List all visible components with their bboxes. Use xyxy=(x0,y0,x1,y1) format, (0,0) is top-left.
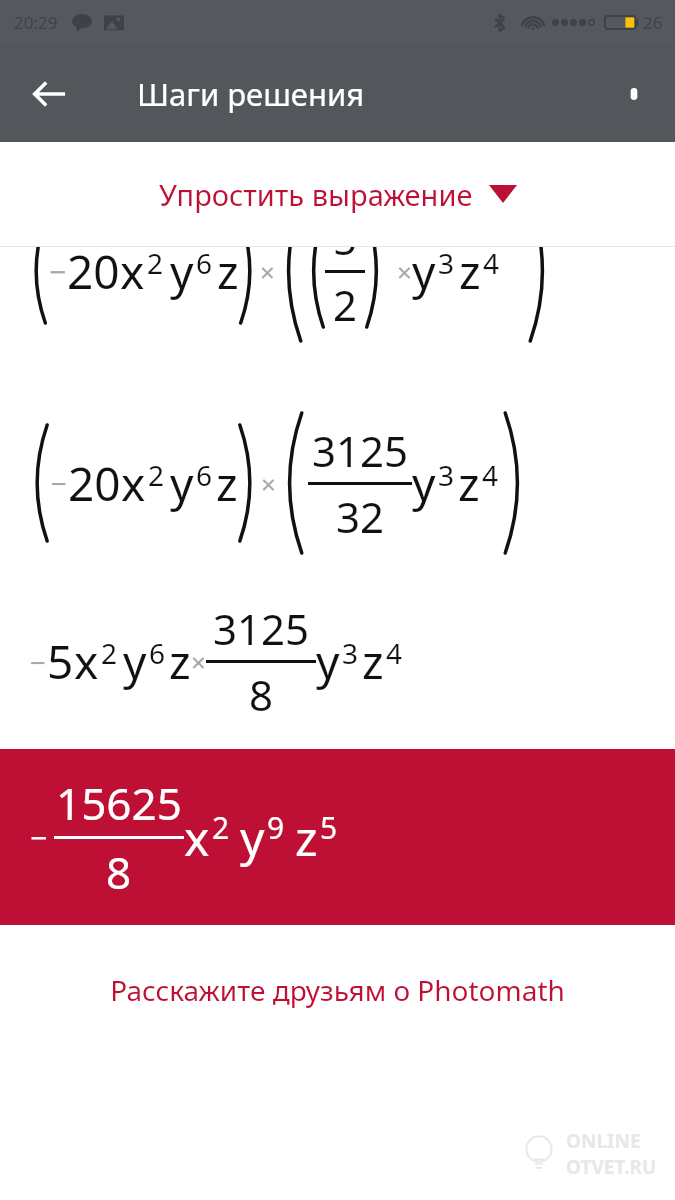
staticText: y xyxy=(412,247,436,303)
staticText: 3125 xyxy=(312,422,409,479)
staticText: × xyxy=(261,466,276,501)
staticText: 3 xyxy=(438,456,455,494)
button[interactable]: Упростить выражение xyxy=(0,142,675,246)
staticText: y xyxy=(316,630,340,693)
staticText: y xyxy=(170,247,194,303)
staticText: z xyxy=(362,630,384,693)
staticText: Расскажите друзьям о Photomath xyxy=(110,971,565,1009)
staticText: z xyxy=(217,247,239,303)
staticText: Шаги решения xyxy=(137,73,365,115)
staticText: ONLINE xyxy=(566,1128,641,1154)
staticText: y xyxy=(123,630,147,693)
staticText: 20:29 xyxy=(14,11,58,34)
staticText: 4 xyxy=(483,247,500,282)
button[interactable]: − xyxy=(0,749,675,925)
staticText: 6 xyxy=(196,247,213,282)
staticText: Упростить выражение xyxy=(159,175,473,214)
staticText: 3 xyxy=(438,247,455,282)
staticText: 5 xyxy=(320,807,338,848)
staticText: 4 xyxy=(482,456,499,494)
staticText: y xyxy=(412,452,436,515)
staticText: 5 xyxy=(47,630,74,693)
staticText: z xyxy=(459,247,481,303)
staticText: x xyxy=(120,247,145,303)
button[interactable]: Расскажите друзьям о Photomath xyxy=(0,925,675,1055)
staticText: − xyxy=(30,643,47,681)
button[interactable]: − xyxy=(0,573,675,749)
staticText: 2 xyxy=(333,276,358,333)
staticText: 32 xyxy=(336,488,385,545)
staticText: y xyxy=(170,452,194,515)
staticText: z xyxy=(216,452,238,515)
staticText: z xyxy=(169,630,191,693)
staticText: − xyxy=(49,251,67,292)
staticText: y xyxy=(240,805,265,870)
staticText: 8 xyxy=(106,842,132,902)
staticText: 2 xyxy=(147,247,164,282)
staticText: z xyxy=(458,452,480,515)
staticText: × xyxy=(397,254,412,289)
staticText: OTVET.RU xyxy=(566,1154,657,1180)
button[interactable]: Back xyxy=(22,67,76,121)
staticText: 20 xyxy=(68,452,121,515)
staticText: x xyxy=(74,630,99,693)
staticText: 2 xyxy=(148,456,165,494)
staticText: 3125 xyxy=(213,600,310,657)
button[interactable]: − xyxy=(0,247,675,393)
staticText: 2 xyxy=(212,807,230,848)
staticText: 4 xyxy=(386,634,403,672)
staticText: 8 xyxy=(249,666,274,723)
staticText: z xyxy=(295,805,318,870)
staticText: − xyxy=(51,464,68,502)
staticText: 15625 xyxy=(56,773,182,833)
staticText: x xyxy=(121,452,146,515)
button[interactable]: − xyxy=(0,393,675,573)
staticText: 6 xyxy=(196,456,213,494)
staticText: 6 xyxy=(149,634,166,672)
button[interactable]: More options xyxy=(607,67,661,121)
staticText: × xyxy=(260,254,275,289)
staticText: 2 xyxy=(101,634,118,672)
staticText: 26 xyxy=(643,11,663,34)
staticText: 3 xyxy=(342,634,359,672)
staticText: 9 xyxy=(267,807,285,848)
staticText: x xyxy=(184,805,210,870)
staticText: − xyxy=(30,817,48,858)
staticText: 20 xyxy=(67,247,120,303)
staticText: 5 xyxy=(333,247,358,267)
staticText: × xyxy=(191,644,206,679)
